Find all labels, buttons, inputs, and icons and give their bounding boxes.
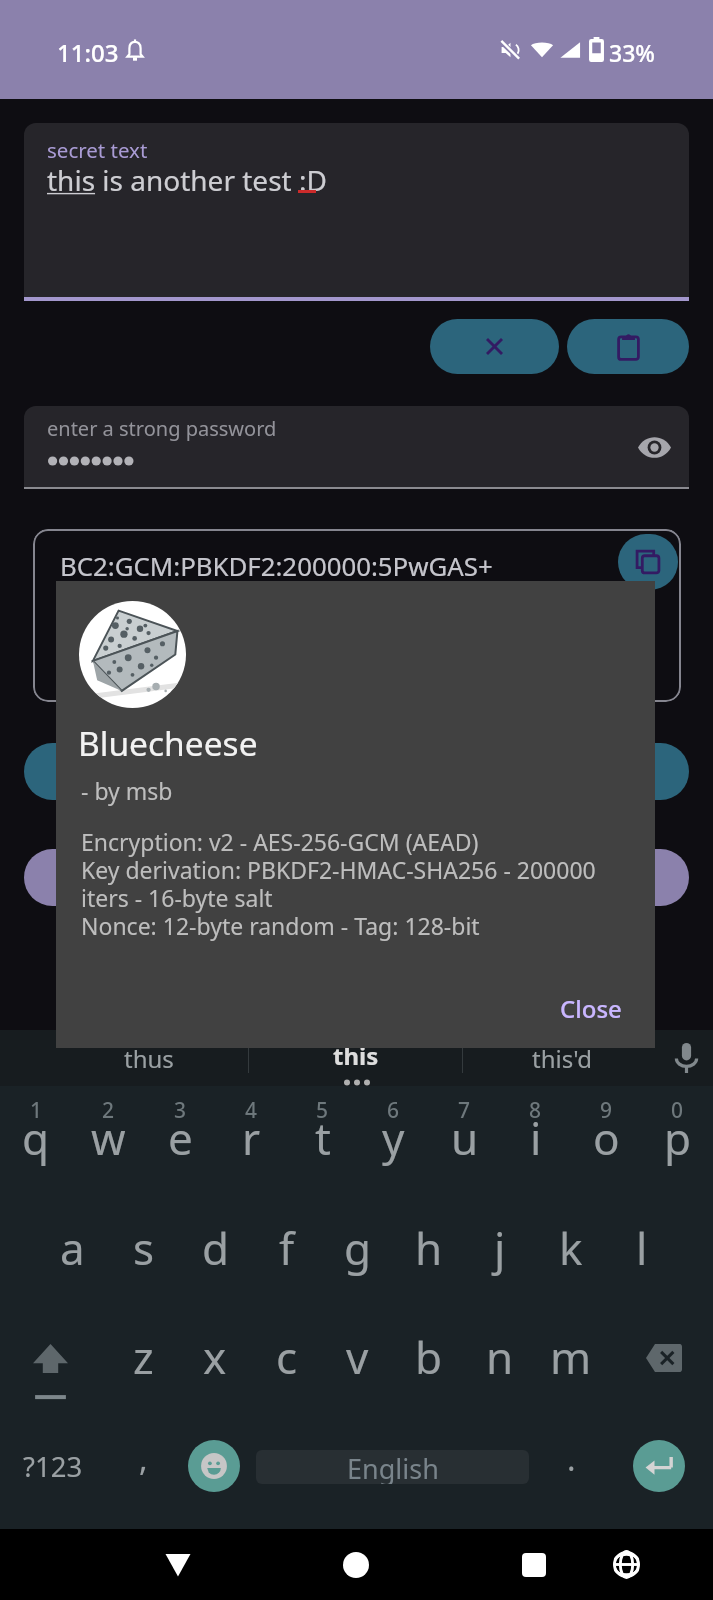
button[interactable]: Emoji [188, 1440, 240, 1492]
button[interactable]: h [393, 1218, 464, 1290]
staticText: z [133, 1327, 154, 1387]
staticText: . [567, 1437, 576, 1481]
staticText: English [347, 1450, 439, 1484]
button[interactable]: c [251, 1327, 322, 1403]
button[interactable] [24, 849, 689, 906]
staticText: m [550, 1327, 592, 1387]
button[interactable]: i [500, 1108, 571, 1180]
staticText: d [202, 1218, 230, 1278]
button[interactable]: p [642, 1108, 713, 1180]
button[interactable]: g [322, 1218, 393, 1290]
staticText: l [636, 1218, 648, 1278]
staticText: Encryption: v2 - AES-256-GCM (AEAD) Key … [81, 826, 596, 942]
staticText: 0 [671, 1096, 684, 1124]
button[interactable]: Back [134, 1529, 222, 1600]
staticText: n [486, 1327, 514, 1387]
staticText: s [133, 1218, 155, 1278]
button[interactable]: e [144, 1108, 216, 1180]
button[interactable]: v [322, 1327, 393, 1403]
staticText: f [279, 1218, 295, 1278]
staticText: g [344, 1218, 372, 1278]
button[interactable]: Home [312, 1529, 400, 1600]
staticText: 2 [102, 1096, 115, 1124]
staticText: BC2:GCM:PBKDF2:200000:5PwGAS+ [60, 548, 493, 583]
button[interactable]: Backspace [610, 1344, 713, 1420]
button[interactable]: Change keyboard [582, 1529, 670, 1600]
button[interactable]: . [540, 1440, 602, 1492]
button[interactable]: Recents [490, 1529, 578, 1600]
button[interactable]: ?123 [0, 1440, 106, 1492]
staticText: 1 [30, 1096, 43, 1124]
button[interactable]: this'd [502, 1030, 622, 1086]
button[interactable]: BC2:GCM:PBKDF2:200000:5PwGAS+ [33, 529, 681, 702]
staticText: b [415, 1327, 443, 1387]
button[interactable]: Clear [430, 319, 559, 374]
button[interactable]: s [108, 1218, 180, 1290]
staticText: x [203, 1327, 227, 1387]
button[interactable]: o [571, 1108, 642, 1180]
staticText: enter a strong password [47, 415, 277, 442]
button[interactable]: l [606, 1218, 677, 1290]
button[interactable]: f [251, 1218, 322, 1290]
staticText: i [530, 1108, 542, 1168]
button[interactable]: w [72, 1108, 144, 1180]
button[interactable]: b [393, 1327, 464, 1403]
button[interactable]: d [180, 1218, 251, 1290]
button[interactable]: Copy [618, 534, 678, 590]
staticText: 8 [529, 1096, 542, 1124]
staticText: , [139, 1437, 148, 1481]
staticText: ?123 [23, 1448, 83, 1485]
staticText: p [664, 1108, 692, 1168]
staticText: 9 [600, 1096, 613, 1124]
staticText: k [559, 1218, 583, 1278]
button[interactable]: t [287, 1108, 358, 1180]
button[interactable]: Close [540, 985, 642, 1031]
staticText: r [242, 1108, 261, 1168]
button[interactable]: k [535, 1218, 606, 1290]
button[interactable]: q [0, 1108, 72, 1180]
staticText: u [451, 1108, 479, 1168]
staticText: Bluecheese [78, 720, 258, 766]
staticText: this'd [532, 1042, 592, 1075]
button[interactable]: Shift [0, 1344, 104, 1420]
staticText: 4 [245, 1096, 258, 1124]
button[interactable]: Show password [630, 423, 678, 471]
staticText: 7 [458, 1096, 471, 1124]
staticText: 33% [609, 37, 655, 68]
button[interactable]: z [107, 1327, 179, 1403]
button[interactable]: English [256, 1450, 529, 1484]
staticText: c [276, 1327, 298, 1387]
staticText: y [382, 1108, 405, 1168]
button[interactable]: j [464, 1218, 535, 1290]
staticText: w [91, 1108, 126, 1168]
button[interactable]: a [36, 1218, 108, 1290]
button[interactable]: Voice input [654, 1030, 713, 1086]
button[interactable]: secret text [24, 123, 689, 297]
staticText: o [593, 1108, 620, 1168]
button[interactable]: n [464, 1327, 535, 1403]
button[interactable]: this [296, 1030, 416, 1086]
staticText: a [60, 1218, 85, 1278]
staticText: thus [124, 1042, 174, 1075]
button[interactable]: , [110, 1440, 176, 1492]
button[interactable]: x [179, 1327, 251, 1403]
staticText: v [346, 1327, 369, 1387]
button[interactable]: y [358, 1108, 429, 1180]
button[interactable] [24, 743, 689, 800]
staticText: - by msb [81, 775, 173, 806]
button[interactable]: u [429, 1108, 500, 1180]
button[interactable]: m [535, 1327, 606, 1403]
staticText: this [333, 1039, 379, 1072]
button[interactable]: Enter [633, 1440, 685, 1492]
staticText: q [22, 1108, 50, 1168]
button[interactable]: thus [89, 1030, 209, 1086]
staticText: this is another test :D [47, 161, 327, 199]
button[interactable]: r [216, 1108, 287, 1180]
staticText: e [168, 1108, 193, 1168]
staticText: 11:03 [57, 36, 119, 69]
staticText: t [315, 1108, 331, 1168]
button[interactable]: Paste [567, 319, 689, 374]
staticText: 3 [174, 1096, 187, 1124]
button[interactable]: enter a strong password [24, 406, 689, 487]
staticText: Close [560, 992, 622, 1025]
